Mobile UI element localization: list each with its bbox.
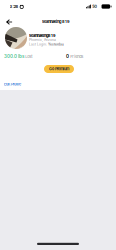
staticText: Phoenix, Arizona xyxy=(29,38,56,42)
staticText: seannaking819 xyxy=(42,19,70,24)
staticText: seannaking819 xyxy=(29,33,56,38)
button[interactable]: Edit Profile xyxy=(4,82,21,86)
staticText: Lost xyxy=(25,54,32,59)
staticText: Last Login: xyxy=(29,42,47,46)
button[interactable]: Go Premium xyxy=(44,65,74,73)
staticText: 0 xyxy=(66,54,69,59)
staticText: Edit Profile xyxy=(4,82,21,86)
staticText: Friends xyxy=(70,54,83,59)
staticText: Yesterday xyxy=(48,42,64,46)
staticText: 5G xyxy=(92,4,97,9)
staticText: 3:28 xyxy=(9,4,18,9)
staticText: 300.0 lbs xyxy=(4,54,24,59)
button[interactable]: Back xyxy=(0,16,18,28)
staticText: Go Premium xyxy=(49,67,69,71)
